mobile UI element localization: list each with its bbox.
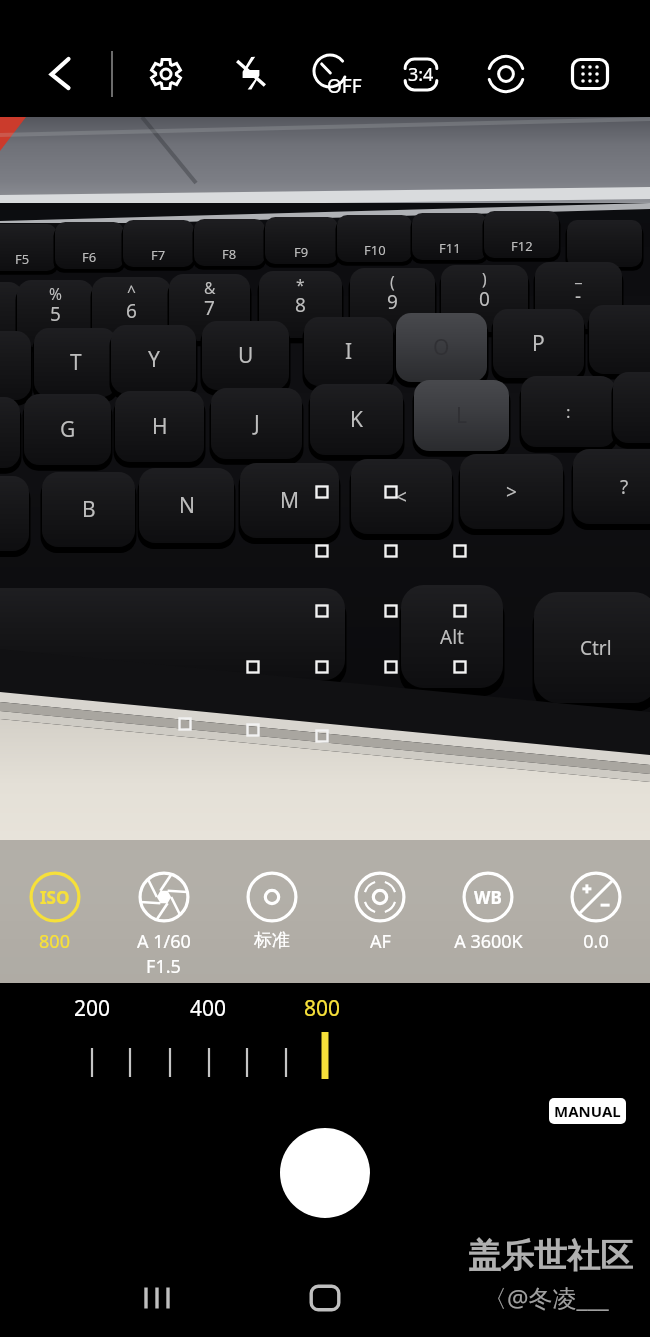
staticText: T [70, 348, 82, 377]
staticText: A 1/60 [137, 929, 191, 954]
staticText: M [280, 486, 300, 515]
button[interactable]: MANUAL [549, 1098, 626, 1124]
staticText: A 3600K [454, 929, 523, 954]
staticText: 7 [204, 295, 215, 321]
button[interactable]: Picture style [218, 840, 326, 952]
staticText: 0.0 [583, 929, 609, 954]
staticText: _ [575, 265, 582, 286]
staticText: Ctrl [580, 635, 612, 661]
staticText: 800 [304, 994, 341, 1023]
staticText: Y [148, 345, 160, 374]
staticText: & [204, 277, 216, 298]
staticText: H [152, 412, 168, 441]
staticText: O [433, 333, 450, 362]
staticText: 5 [50, 301, 61, 327]
staticText: 标准 [254, 929, 290, 952]
staticText: U [238, 341, 254, 370]
button[interactable]: Home [297, 1274, 353, 1322]
staticText: AF [370, 929, 391, 954]
button[interactable]: Aspect ratio 3 by 4 [393, 46, 449, 102]
staticText: Alt [440, 624, 464, 650]
button[interactable]: ISO slider [0, 983, 650, 1093]
staticText: WB [474, 886, 502, 909]
staticText: - [575, 283, 582, 309]
button[interactable]: Back [32, 46, 88, 102]
staticText: F9 [294, 243, 309, 261]
button[interactable]: Focus mode [326, 840, 434, 954]
staticText: 3:4 [408, 62, 434, 87]
button[interactable]: Exposure value [542, 840, 650, 954]
staticText: ISO [40, 886, 70, 909]
staticText: < [396, 484, 407, 510]
staticText: 0 [479, 286, 490, 312]
button[interactable]: Metering mode [478, 46, 534, 102]
staticText: OFF [327, 73, 362, 99]
staticText: MANUAL [554, 1101, 621, 1121]
button[interactable]: Settings [138, 46, 194, 102]
staticText: % [49, 283, 62, 304]
staticText: > [506, 479, 517, 505]
staticText: F8 [222, 245, 237, 263]
staticText: G [60, 415, 76, 444]
staticText: F6 [82, 248, 97, 266]
staticText: 8 [295, 292, 306, 318]
staticText: P [532, 329, 545, 358]
button[interactable]: Shutter and aperture [109, 840, 218, 979]
staticText: : [566, 400, 571, 423]
staticText: 9 [387, 289, 398, 315]
staticText: F1.5 [146, 954, 181, 979]
button[interactable]: More options [562, 46, 618, 102]
staticText: I [345, 337, 353, 366]
staticText: F7 [151, 246, 166, 264]
staticText: ^ [127, 280, 136, 301]
staticText: ( [390, 271, 395, 292]
button[interactable]: Timer off [306, 46, 366, 102]
staticText: 200 [74, 994, 111, 1023]
staticText: ) [482, 268, 487, 289]
button[interactable]: Shutter [280, 1128, 370, 1218]
staticText: 盖乐世社区 [468, 1235, 633, 1277]
staticText: N [179, 491, 195, 520]
staticText: 〈@冬凌___ [483, 1281, 609, 1314]
button[interactable]: ISO [0, 840, 109, 954]
staticText: F12 [511, 237, 533, 255]
staticText: F5 [15, 250, 30, 268]
staticText: 800 [39, 929, 70, 954]
button[interactable]: White balance [434, 840, 542, 954]
staticText: F10 [364, 241, 386, 259]
staticText: B [82, 495, 96, 524]
button[interactable]: Flash off [223, 45, 279, 101]
staticText: 6 [126, 298, 137, 324]
staticText: J [254, 409, 260, 438]
staticText: * [296, 274, 305, 295]
staticText: K [350, 405, 363, 434]
staticText: L [456, 401, 468, 430]
staticText: 400 [190, 994, 227, 1023]
staticText: F11 [439, 239, 461, 257]
staticText: ? [620, 474, 629, 500]
button[interactable]: Recents [129, 1274, 185, 1322]
